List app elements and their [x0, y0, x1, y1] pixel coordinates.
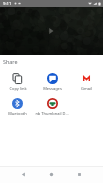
- staticText: 9:11: [3, 1, 12, 7]
- staticText: Copy link: [9, 86, 27, 91]
- staticText: Gmail: [81, 86, 92, 91]
- button[interactable]: Copy link: [0, 73, 35, 91]
- button[interactable]: Home: [41, 166, 61, 183]
- staticText: Bluetooth: [8, 111, 27, 116]
- button[interactable]: nb Thumbnail Down...: [35, 98, 69, 116]
- staticText: Share: [3, 58, 18, 65]
- button[interactable]: Gmail: [69, 73, 103, 91]
- button[interactable]: Messages: [35, 73, 69, 91]
- staticText: Messages: [43, 86, 62, 91]
- button[interactable]: Recent apps: [69, 166, 89, 183]
- button[interactable]: Bluetooth: [0, 98, 35, 116]
- staticText: nb Thumbnail Down...: [35, 111, 69, 116]
- button[interactable]: Back: [13, 166, 33, 183]
